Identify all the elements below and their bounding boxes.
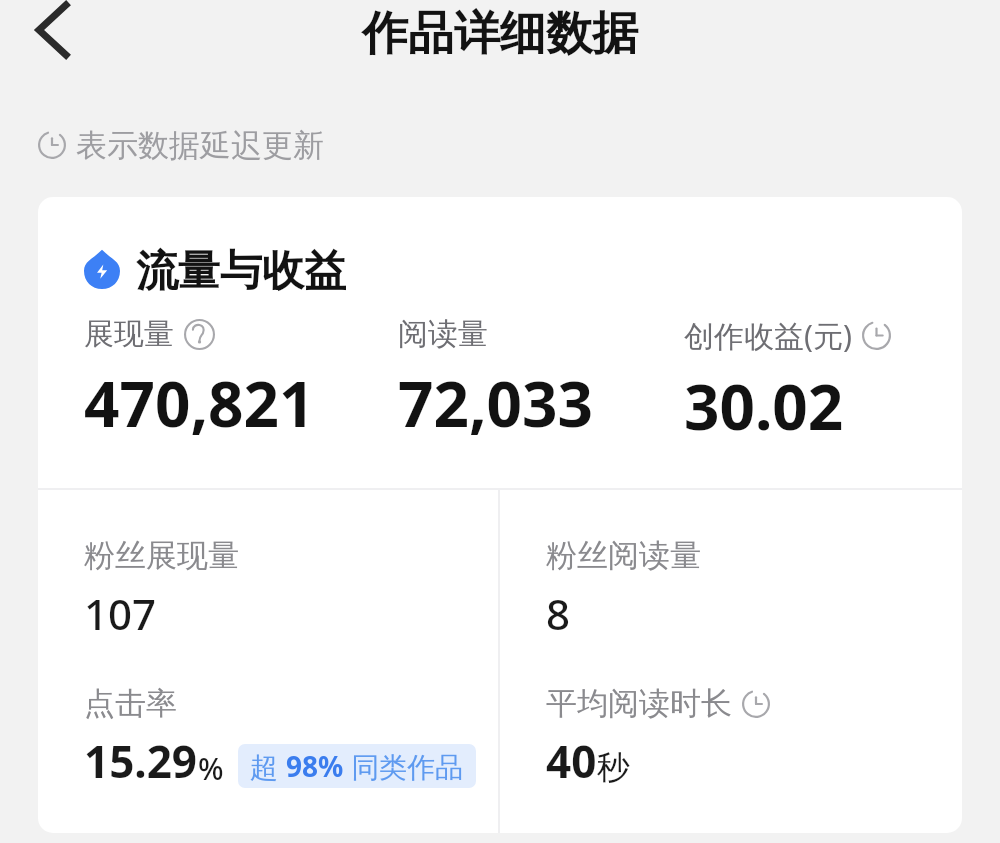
staticText: 创作收益(元) <box>684 315 852 356</box>
staticText: 粉丝展现量 <box>84 536 239 575</box>
button[interactable]: 展现量 <box>84 315 398 445</box>
staticText: 40 <box>546 731 597 791</box>
staticText: 107 <box>84 585 157 642</box>
button[interactable]: 平均阅读时长 <box>546 684 770 791</box>
staticText: 8 <box>546 585 571 642</box>
staticText: 表示数据延迟更新 <box>76 126 324 164</box>
staticText: 展现量 <box>84 315 174 353</box>
staticText: % <box>198 748 224 789</box>
staticText: 秒 <box>597 747 630 789</box>
staticText: 72,033 <box>398 361 593 445</box>
staticText: 15.29 <box>84 731 198 791</box>
staticText: 超 <box>250 747 286 785</box>
button[interactable]: Back <box>18 0 88 62</box>
staticText: 平均阅读时长 <box>546 684 732 723</box>
button[interactable]: 创作收益(元) <box>684 315 962 448</box>
staticText: 点击率 <box>84 684 177 723</box>
button[interactable]: 粉丝展现量 <box>84 536 239 642</box>
button[interactable]: 点击率 <box>84 684 476 791</box>
staticText: 作品详细数据 <box>0 5 1000 63</box>
staticText: 粉丝阅读量 <box>546 536 701 575</box>
staticText: 流量与收益 <box>136 245 346 293</box>
staticText: 同类作品 <box>344 747 464 785</box>
button[interactable]: 粉丝阅读量 <box>546 536 701 642</box>
staticText: 30.02 <box>684 364 844 448</box>
staticText: 阅读量 <box>398 315 488 353</box>
staticText: 470,821 <box>84 361 315 445</box>
staticText: 98% <box>286 747 344 785</box>
button[interactable]: 阅读量 <box>398 315 684 445</box>
button[interactable]: 超 <box>238 744 476 788</box>
